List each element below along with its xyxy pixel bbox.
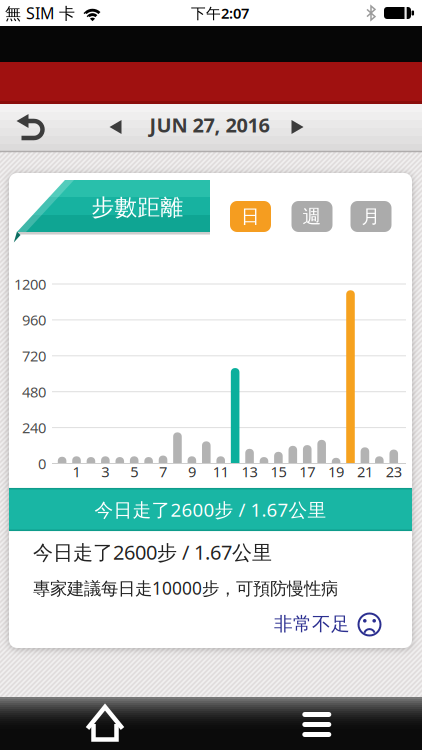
staticText: 19 [328, 462, 344, 481]
staticText: 專家建議每日走10000步，可預防慢性病 [33, 576, 338, 599]
staticText: 無 SIM 卡 [5, 2, 75, 24]
staticText: 15 [270, 462, 286, 481]
staticText: 7 [159, 462, 167, 481]
staticText: 5 [130, 462, 138, 481]
staticText: 3 [101, 462, 109, 481]
staticText: 23 [386, 462, 402, 481]
staticText: 720 [22, 346, 46, 366]
staticText: 1 [72, 462, 80, 481]
button[interactable] [105, 117, 125, 137]
staticText: 17 [299, 462, 315, 481]
staticText: 0 [38, 454, 46, 473]
button[interactable] [287, 117, 307, 137]
button[interactable] [13, 108, 49, 146]
button[interactable]: 週 [291, 201, 332, 232]
staticText: 非常不足 [274, 612, 350, 635]
staticText: 月 [361, 205, 380, 228]
staticText: JUN 27, 2016 [149, 111, 269, 138]
staticText: 步數距離 [91, 194, 183, 221]
staticText: 240 [22, 418, 46, 437]
button[interactable] [295, 702, 339, 746]
button[interactable]: 月 [350, 201, 391, 232]
button[interactable] [83, 703, 127, 747]
staticText: 日 [241, 205, 260, 228]
button[interactable]: 日 [230, 201, 271, 232]
staticText: 今日走了2600步 / 1.67公里 [33, 539, 272, 565]
staticText: 9 [188, 462, 196, 481]
staticText: 週 [302, 205, 321, 228]
staticText: 13 [242, 462, 258, 481]
staticText: 11 [213, 462, 229, 481]
staticText: 960 [22, 310, 46, 330]
staticText: 480 [22, 382, 46, 401]
staticText: 1200 [14, 274, 46, 294]
staticText: 21 [357, 462, 373, 481]
staticText: 下午2:07 [191, 3, 249, 23]
staticText: 今日走了2600步 / 1.67公里 [94, 497, 326, 522]
